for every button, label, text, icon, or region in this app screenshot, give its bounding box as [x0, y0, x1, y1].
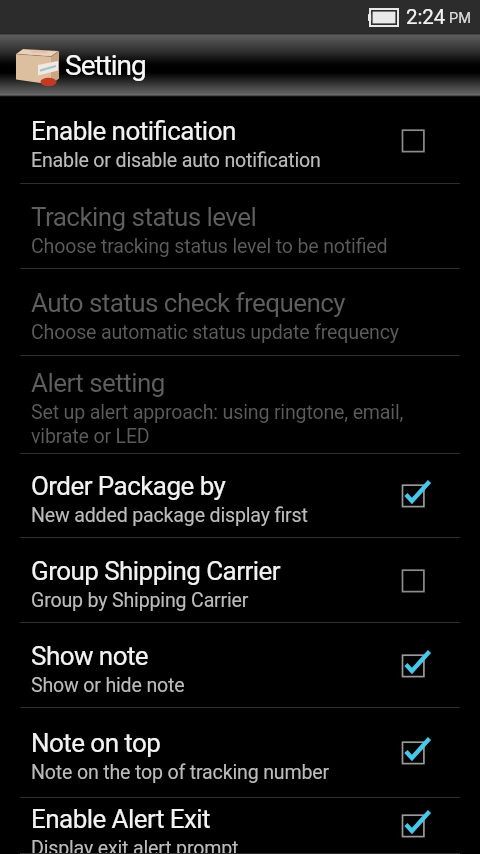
staticText: Tracking status level: [31, 202, 257, 232]
staticText: Enable or disable auto notification: [31, 149, 321, 172]
staticText: Show or hide note: [31, 674, 185, 697]
staticText: Alert setting: [31, 368, 165, 398]
button[interactable]: Auto status check frequency: [0, 269, 480, 356]
staticText: Group Shipping Carrier: [31, 556, 280, 586]
staticText: Note on the top of tracking number: [31, 761, 329, 784]
staticText: Choose tracking status level to be notif…: [31, 235, 388, 258]
button[interactable]: Alert setting: [0, 356, 480, 454]
staticText: Set up alert approach: using ringtone, e…: [31, 401, 436, 448]
staticText: Order Package by: [31, 471, 226, 501]
staticText: Show note: [31, 641, 149, 671]
button[interactable]: Show note: [0, 623, 480, 708]
staticText: 2:24: [406, 5, 446, 29]
staticText: Setting: [65, 49, 146, 82]
staticText: Enable Alert Exit: [31, 804, 211, 834]
staticText: New added package display first: [31, 504, 308, 527]
staticText: Group by Shipping Carrier: [31, 589, 249, 612]
staticText: Enable notification: [31, 116, 236, 146]
button[interactable]: Group Shipping Carrier: [0, 538, 480, 623]
staticText: Display exit alert prompt: [31, 837, 239, 854]
staticText: Note on top: [31, 728, 161, 758]
staticText: Auto status check frequency: [31, 288, 346, 318]
button[interactable]: Enable Alert Exit: [0, 798, 480, 854]
button[interactable]: Enable notification: [0, 97, 480, 184]
button[interactable]: Tracking status level: [0, 184, 480, 269]
button[interactable]: Order Package by: [0, 454, 480, 538]
staticText: Choose automatic status update frequency: [31, 321, 399, 344]
button[interactable]: Note on top: [0, 708, 480, 798]
staticText: PM: [449, 9, 471, 26]
